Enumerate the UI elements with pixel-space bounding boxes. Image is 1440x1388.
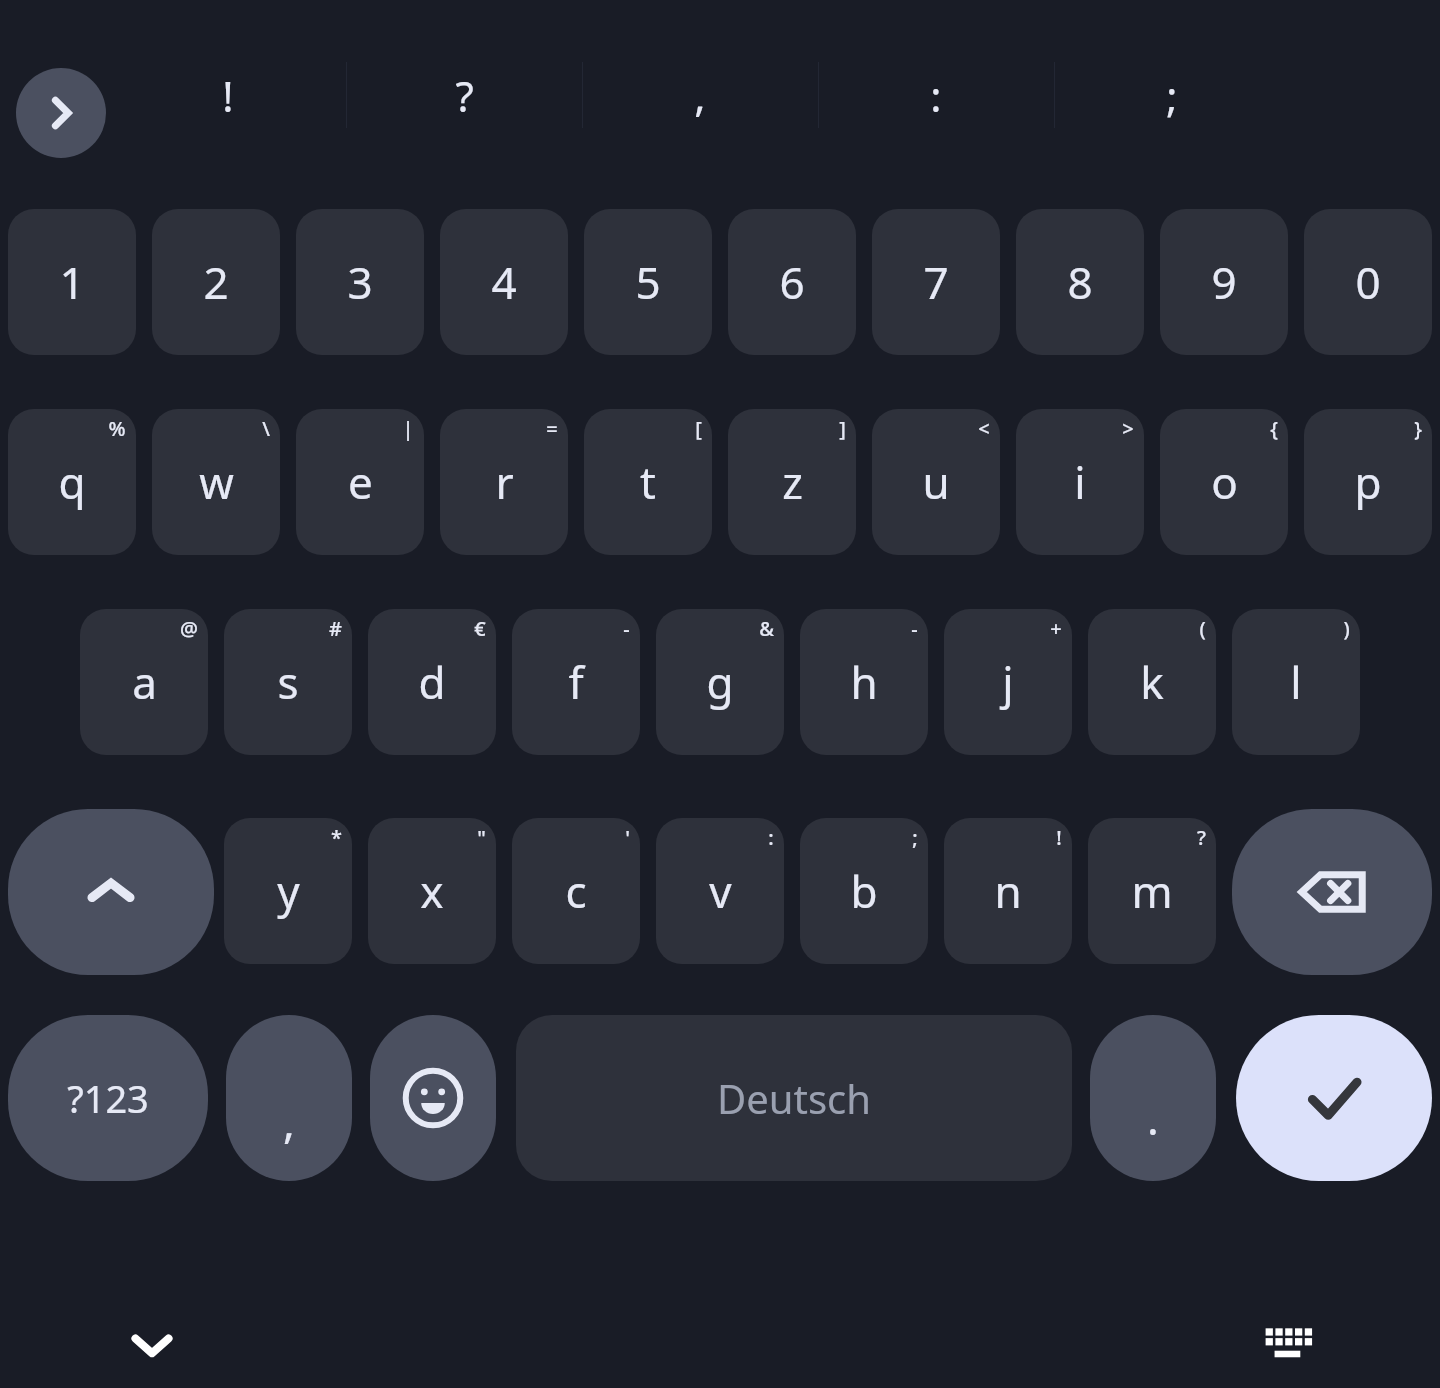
staticText: | bbox=[402, 415, 414, 442]
button[interactable]: 9 bbox=[1160, 209, 1288, 355]
button[interactable]: 0 bbox=[1304, 209, 1432, 355]
staticText: { bbox=[1270, 415, 1278, 442]
button[interactable]: , bbox=[226, 1015, 352, 1181]
button[interactable]: ! bbox=[110, 40, 346, 150]
staticText: ] bbox=[839, 415, 846, 442]
button[interactable]: Backspace bbox=[1232, 809, 1432, 975]
button[interactable]: Deutsch bbox=[516, 1015, 1072, 1181]
staticText: v bbox=[709, 861, 732, 921]
staticText: ! bbox=[1056, 824, 1062, 851]
button[interactable]: Shift bbox=[8, 809, 214, 975]
button[interactable]: 6 bbox=[728, 209, 856, 355]
button[interactable]: i bbox=[1016, 409, 1144, 555]
button[interactable]: f bbox=[512, 609, 640, 755]
staticText: l bbox=[1290, 652, 1302, 712]
button[interactable]: . bbox=[1090, 1015, 1216, 1181]
button[interactable]: y bbox=[224, 818, 352, 964]
button[interactable]: Enter bbox=[1236, 1015, 1432, 1181]
button[interactable]: h bbox=[800, 609, 928, 755]
button[interactable]: More suggestions bbox=[16, 68, 106, 158]
button[interactable]: ? bbox=[346, 40, 582, 150]
staticText: i bbox=[1074, 452, 1086, 512]
button[interactable]: j bbox=[944, 609, 1072, 755]
button[interactable]: 2 bbox=[152, 209, 280, 355]
staticText: s bbox=[277, 652, 299, 712]
button[interactable]: r bbox=[440, 409, 568, 555]
staticText: c bbox=[565, 861, 587, 921]
button[interactable]: v bbox=[656, 818, 784, 964]
staticText: 6 bbox=[779, 252, 805, 312]
button[interactable]: p bbox=[1304, 409, 1432, 555]
button[interactable]: 5 bbox=[584, 209, 712, 355]
staticText: } bbox=[1414, 415, 1422, 442]
staticText: f bbox=[568, 652, 584, 712]
staticText: ) bbox=[1343, 615, 1350, 642]
staticText: e bbox=[348, 452, 373, 512]
button[interactable]: n bbox=[944, 818, 1072, 964]
staticText: % bbox=[108, 415, 126, 442]
button[interactable]: o bbox=[1160, 409, 1288, 555]
button[interactable]: , bbox=[582, 40, 818, 150]
staticText: ; bbox=[912, 824, 918, 851]
staticText: r bbox=[495, 452, 514, 512]
button[interactable]: d bbox=[368, 609, 496, 755]
staticText: z bbox=[782, 452, 803, 512]
button[interactable]: 1 bbox=[8, 209, 136, 355]
staticText: w bbox=[199, 452, 234, 512]
staticText: u bbox=[922, 452, 950, 512]
staticText: , bbox=[283, 1091, 295, 1151]
staticText: + bbox=[1050, 615, 1062, 642]
staticText: n bbox=[994, 861, 1022, 921]
button[interactable]: s bbox=[224, 609, 352, 755]
staticText: p bbox=[1354, 452, 1382, 512]
button[interactable]: b bbox=[800, 818, 928, 964]
button[interactable]: 8 bbox=[1016, 209, 1144, 355]
staticText: " bbox=[477, 824, 486, 851]
staticText: > bbox=[1122, 415, 1134, 442]
staticText: ? bbox=[455, 67, 474, 124]
staticText: q bbox=[58, 452, 86, 512]
staticText: o bbox=[1211, 452, 1238, 512]
button[interactable]: e bbox=[296, 409, 424, 555]
button[interactable]: Hide keyboard bbox=[104, 1296, 200, 1388]
staticText: = bbox=[546, 415, 558, 442]
button[interactable]: m bbox=[1088, 818, 1216, 964]
staticText: 7 bbox=[923, 252, 949, 312]
button[interactable]: Switch keyboard bbox=[1240, 1296, 1336, 1388]
button[interactable]: 4 bbox=[440, 209, 568, 355]
button[interactable]: Emoji bbox=[370, 1015, 496, 1181]
button[interactable]: ; bbox=[1054, 40, 1290, 150]
staticText: k bbox=[1140, 652, 1164, 712]
staticText: [ bbox=[695, 415, 702, 442]
button[interactable]: t bbox=[584, 409, 712, 555]
staticText: x bbox=[420, 861, 444, 921]
button[interactable]: : bbox=[818, 40, 1054, 150]
button[interactable]: c bbox=[512, 818, 640, 964]
staticText: j bbox=[1002, 652, 1014, 712]
button[interactable]: u bbox=[872, 409, 1000, 555]
staticText: 9 bbox=[1211, 252, 1237, 312]
staticText: & bbox=[759, 615, 774, 642]
staticText: * bbox=[331, 824, 342, 851]
button[interactable]: g bbox=[656, 609, 784, 755]
button[interactable]: 3 bbox=[296, 209, 424, 355]
button[interactable]: 7 bbox=[872, 209, 1000, 355]
button[interactable]: z bbox=[728, 409, 856, 555]
button[interactable]: ?123 bbox=[8, 1015, 208, 1181]
staticText: : bbox=[768, 824, 774, 851]
button[interactable]: x bbox=[368, 818, 496, 964]
staticText: 4 bbox=[491, 252, 517, 312]
button[interactable]: k bbox=[1088, 609, 1216, 755]
button[interactable]: l bbox=[1232, 609, 1360, 755]
staticText: a bbox=[132, 652, 157, 712]
staticText: 0 bbox=[1355, 252, 1381, 312]
staticText: ! bbox=[222, 67, 234, 124]
button[interactable]: q bbox=[8, 409, 136, 555]
button[interactable]: w bbox=[152, 409, 280, 555]
staticText: 3 bbox=[347, 252, 373, 312]
staticText: : bbox=[930, 67, 942, 124]
button[interactable]: a bbox=[80, 609, 208, 755]
staticText: 2 bbox=[203, 252, 229, 312]
staticText: Deutsch bbox=[717, 1071, 871, 1125]
staticText: - bbox=[911, 615, 918, 642]
